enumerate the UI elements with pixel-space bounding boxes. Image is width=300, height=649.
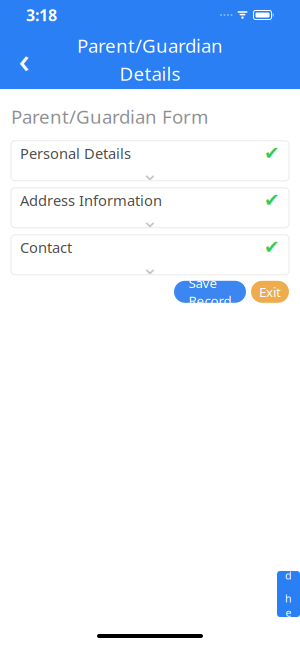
staticText: Personal Details xyxy=(20,144,131,163)
button[interactable]: Save Record xyxy=(174,281,246,303)
button[interactable]: Contact xyxy=(11,235,289,275)
staticText: Save Record xyxy=(188,274,231,309)
staticText: ‹ xyxy=(18,36,29,82)
staticText: ⌄ xyxy=(141,162,158,185)
staticText: e xyxy=(285,605,291,620)
staticText: 3:18 xyxy=(26,4,57,26)
staticText: Parent/Guardian xyxy=(77,33,223,58)
staticText: ✔ xyxy=(264,190,280,211)
staticText: d xyxy=(285,568,292,582)
staticText: Address Information xyxy=(20,191,162,210)
button[interactable]: Need help? xyxy=(277,571,300,617)
staticText: Parent/Guardian Form xyxy=(11,104,208,129)
staticText: ✔ xyxy=(264,237,280,258)
staticText: Details xyxy=(119,61,180,86)
staticText: ⌄ xyxy=(141,256,158,279)
staticText: h xyxy=(285,591,292,605)
button[interactable]: Personal Details xyxy=(11,141,289,181)
button[interactable]: Back xyxy=(9,44,39,74)
button[interactable]: Exit xyxy=(251,281,289,303)
staticText: Contact xyxy=(20,238,72,257)
staticText: ✔ xyxy=(264,143,280,164)
staticText: Exit xyxy=(259,283,281,301)
button[interactable]: Address Information xyxy=(11,188,289,228)
staticText: ⌄ xyxy=(141,209,158,232)
